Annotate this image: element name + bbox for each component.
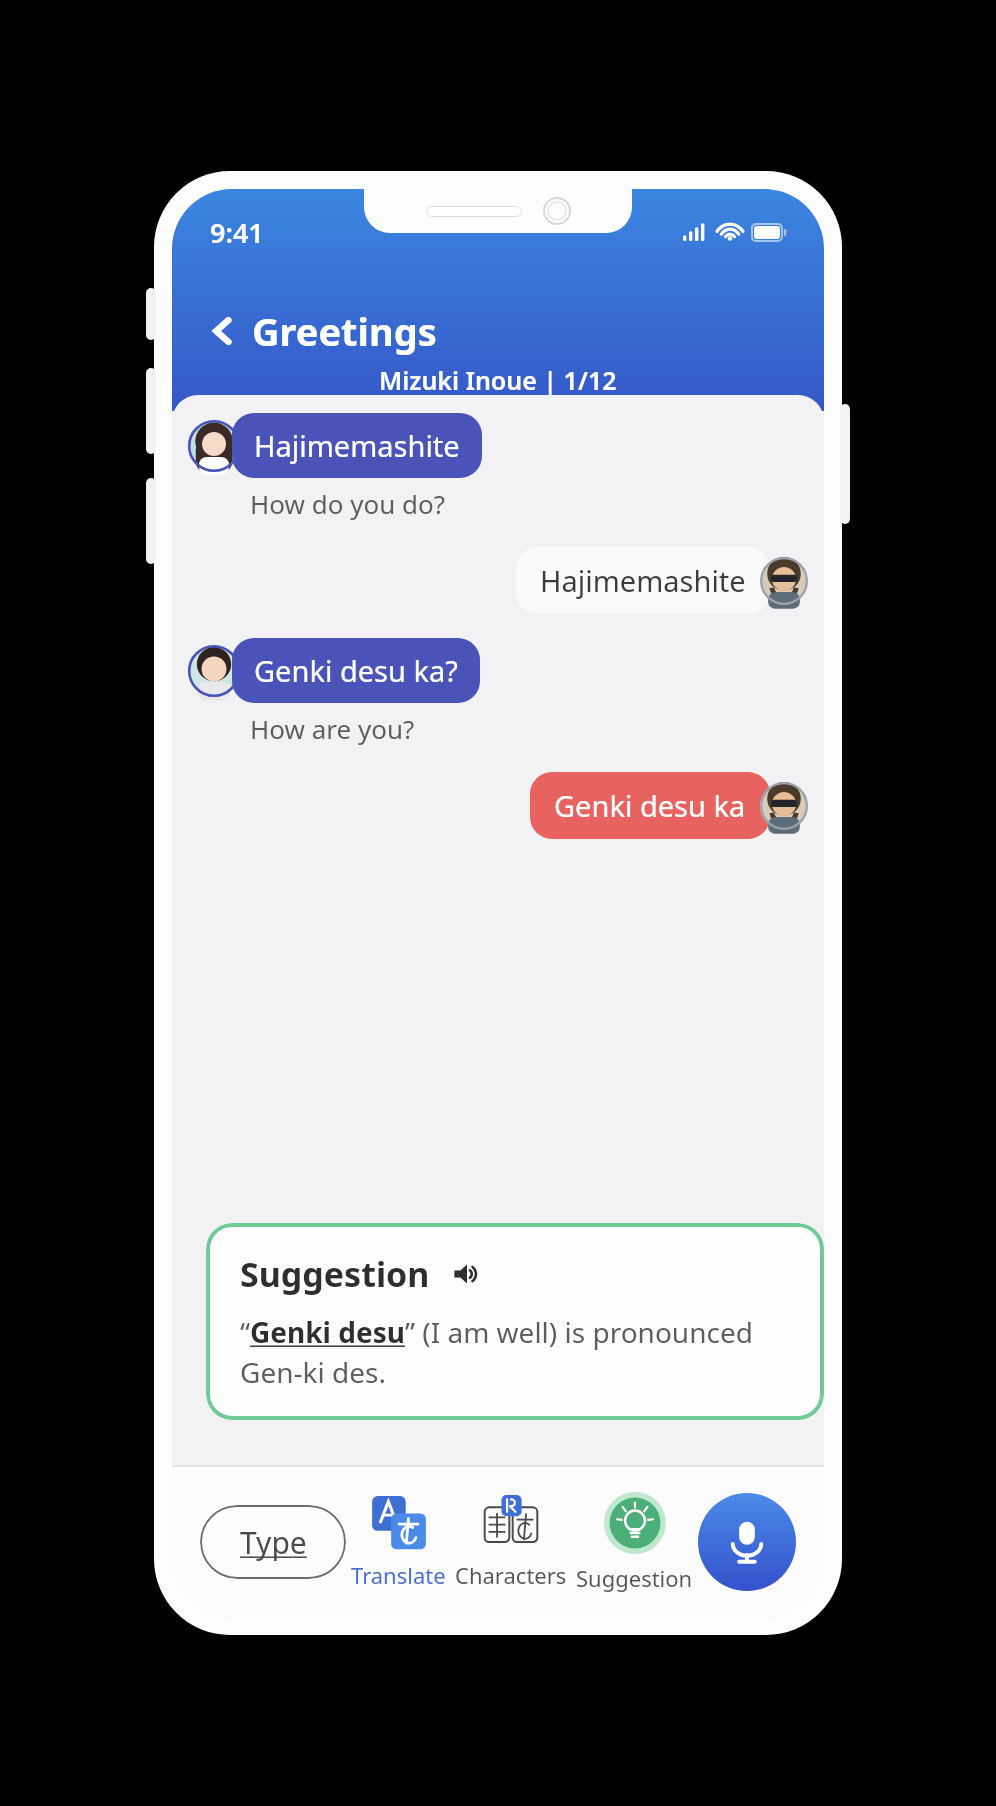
staticText: Suggestion	[240, 1251, 430, 1297]
button[interactable]: Voice input	[698, 1493, 796, 1591]
button[interactable]: Suggestion	[572, 1492, 697, 1593]
staticText: Genki desu ka	[554, 786, 746, 825]
staticText: How do you do?	[250, 486, 445, 521]
other: Characters	[483, 1495, 539, 1551]
other: Suggestion	[604, 1492, 666, 1554]
button[interactable]: Characters	[451, 1495, 571, 1590]
staticText: Mizuki Inoue | 1/12	[379, 363, 617, 397]
staticText: Translate	[351, 1560, 446, 1590]
staticText: Greetings	[252, 305, 437, 357]
staticText: Type	[240, 1522, 307, 1563]
other: Play audio	[452, 1259, 482, 1289]
button[interactable]: Suggestion	[206, 1223, 824, 1420]
button[interactable]: Genki desu ka	[530, 772, 770, 839]
button[interactable]: Hajimemashite	[232, 413, 482, 478]
staticText: Genki desu ka?	[254, 651, 458, 690]
other: Back	[206, 314, 240, 348]
button[interactable]: Genki desu ka?	[232, 638, 480, 703]
other: Translate	[371, 1495, 427, 1551]
staticText: Suggestion	[576, 1563, 693, 1593]
staticText: “Genki desu” (I am well) is pronounced G…	[240, 1313, 790, 1392]
staticText: How are you?	[250, 711, 415, 746]
button[interactable]: Back	[206, 305, 437, 357]
button[interactable]: Hajimemashite	[516, 547, 770, 614]
button[interactable]: Type	[200, 1505, 346, 1579]
staticText: Characters	[455, 1560, 567, 1590]
staticText: 9:41	[210, 214, 264, 251]
button[interactable]: Translate	[347, 1495, 450, 1590]
staticText: Hajimemashite	[254, 426, 460, 465]
staticText: Hajimemashite	[540, 561, 746, 600]
